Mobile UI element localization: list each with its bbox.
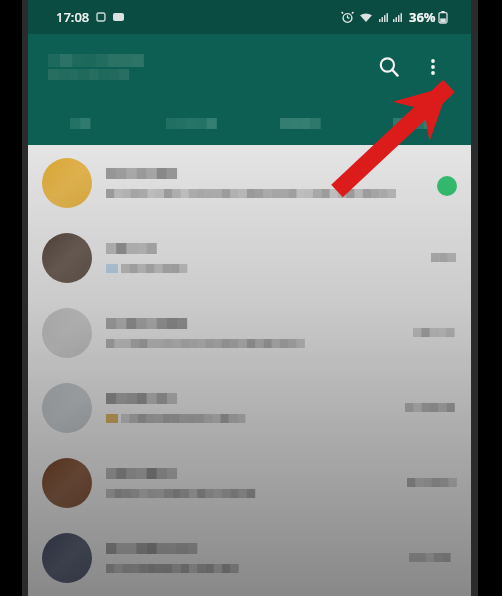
button[interactable]	[138, 108, 249, 138]
button[interactable]	[249, 108, 360, 138]
button[interactable]	[360, 108, 471, 138]
button[interactable]	[28, 370, 471, 445]
button[interactable]	[28, 220, 471, 295]
button[interactable]	[28, 108, 138, 138]
button[interactable]	[28, 295, 471, 370]
button[interactable]: Search	[369, 47, 409, 87]
staticText: 17:08	[56, 8, 90, 26]
button[interactable]	[28, 145, 471, 220]
button[interactable]	[28, 520, 471, 595]
staticText: 36%	[409, 8, 436, 26]
button[interactable]: More options	[413, 47, 453, 87]
button[interactable]	[28, 445, 471, 520]
